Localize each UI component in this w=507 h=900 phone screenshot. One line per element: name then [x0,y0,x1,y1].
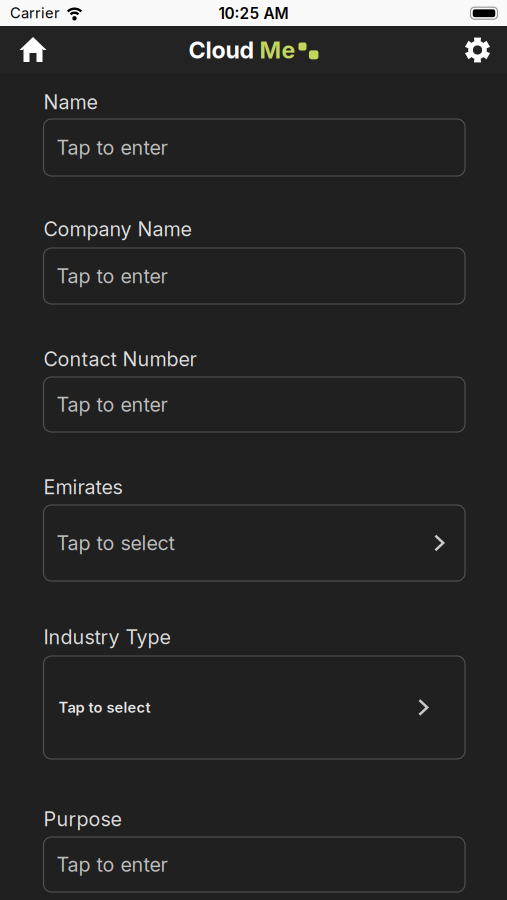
button[interactable]: Tap to select [43,505,465,581]
staticText: Emirates [43,475,122,499]
staticText: Tap to enter [56,136,167,159]
staticText: Purpose [43,807,121,831]
staticText: Me [259,36,295,64]
staticText: Company Name [43,217,191,241]
button[interactable]: Tap to enter [43,837,465,892]
button[interactable]: Home [18,35,48,63]
staticText: Name [43,90,97,114]
button[interactable]: Settings [463,36,491,64]
staticText: Tap to select [56,531,174,555]
staticText: Industry Type [43,625,170,649]
staticText: Tap to select [58,699,150,716]
staticText: 10:25 AM [218,4,288,23]
staticText: Tap to enter [56,393,167,416]
button[interactable]: Tap to select [43,656,465,759]
staticText: Carrier [10,4,60,22]
button[interactable]: Tap to enter [43,248,465,304]
staticText: Tap to enter [56,853,167,876]
staticText: Contact Number [43,347,196,371]
staticText: Cloud [188,36,254,64]
button[interactable]: Tap to enter [43,119,465,176]
staticText: Tap to enter [56,264,167,288]
button[interactable]: Tap to enter [43,377,465,432]
